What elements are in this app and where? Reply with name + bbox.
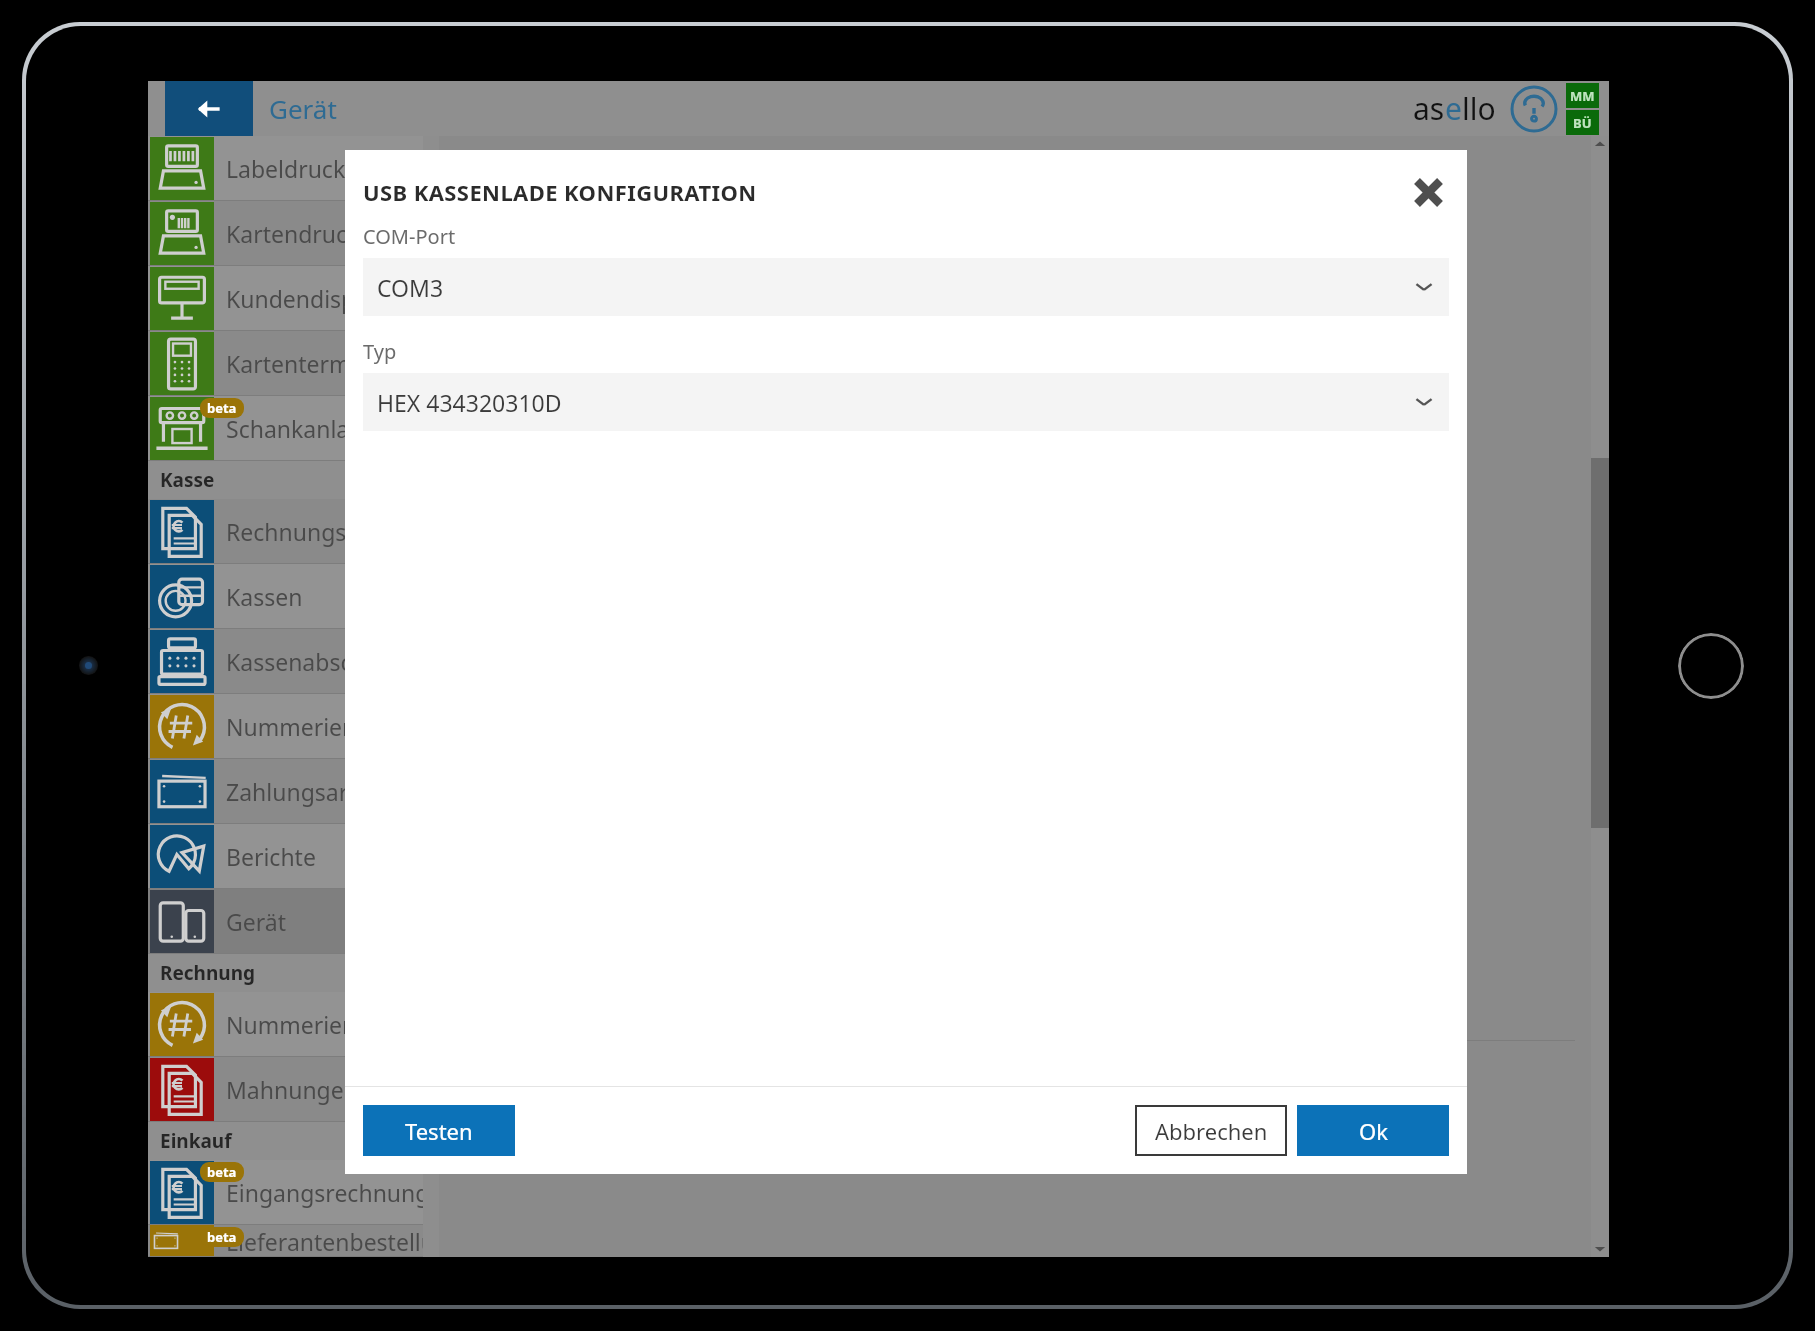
button[interactable]: Rechnungsabschluss [148, 499, 439, 564]
staticText: Rechnungsabschluss [226, 516, 439, 547]
staticText: Testen [405, 1116, 473, 1146]
staticText: Typ [363, 338, 397, 365]
staticText: Gerät [269, 91, 337, 126]
button[interactable]: BÜ [1566, 110, 1599, 135]
staticText: Abbrechen [1155, 1116, 1268, 1146]
button[interactable]: Gerät [148, 889, 439, 954]
staticText: Automatisch Bondrucker wählen [473, 246, 796, 275]
staticText: Kartendrucker [226, 218, 382, 249]
staticText: as [1413, 88, 1445, 129]
staticText: COM-Port [363, 223, 456, 250]
staticText: beta [207, 399, 237, 417]
button[interactable]: Schließen [1407, 171, 1449, 213]
staticText: Lieferantenbestellungen [226, 1226, 439, 1257]
staticText: Eingangsrechnungen [226, 1177, 439, 1208]
staticText: MM [1570, 87, 1595, 105]
staticText: Kundendisplay [226, 283, 386, 314]
staticText: Labeldrucker [226, 153, 368, 184]
staticText: beta [207, 1163, 237, 1181]
staticText: USB KASSENLADE KONFIGURATION [363, 177, 757, 207]
button[interactable]: Ok [1297, 1105, 1449, 1156]
staticText: Ok [1359, 1116, 1388, 1146]
staticText: BÜ [1573, 114, 1592, 132]
button[interactable]: COM3 [363, 258, 1449, 316]
staticText: COM3 [377, 272, 444, 303]
staticText: Kasse [160, 467, 215, 493]
button[interactable]: Nummerierung [148, 992, 439, 1057]
staticText: Nummerierung [226, 1009, 395, 1040]
staticText: Nummerierung [226, 711, 395, 742]
button[interactable]: Tischplan als Liste anzeigen [473, 1077, 772, 1106]
staticText: Tischplan als Liste anzeigen [499, 1077, 772, 1106]
button[interactable]: Eingangsrechnungen [148, 1160, 439, 1225]
staticText: Zahlungsarten [226, 776, 384, 807]
button[interactable]: Testen [363, 1105, 515, 1156]
staticText: Einkauf [160, 1128, 232, 1154]
button[interactable]: Labeldrucker [148, 136, 439, 201]
button[interactable]: Kundendisplay [148, 266, 439, 331]
staticText: Kassen [226, 581, 303, 612]
staticText: Berichte [226, 841, 316, 872]
button[interactable]: Kartendrucker [148, 201, 439, 266]
button[interactable]: Lieferantenbestellungen [148, 1225, 439, 1257]
staticText: HEX 434320310D [377, 387, 562, 418]
staticText: Kassenabschluss [226, 646, 408, 677]
button[interactable]: Berichte [148, 824, 439, 889]
button[interactable]: Nummerierung [148, 694, 439, 759]
button[interactable]: MM [1566, 83, 1599, 108]
staticText: Mahnungen [226, 1074, 358, 1105]
staticText: beta [207, 1228, 237, 1246]
staticText: e [1445, 88, 1462, 129]
button[interactable]: Hilfe [1510, 85, 1558, 133]
button[interactable]: Mahnungen [148, 1057, 439, 1122]
button[interactable]: Zahlungsarten [148, 759, 439, 824]
staticText: Gerät [226, 906, 286, 937]
button[interactable]: Schankanlage [148, 396, 439, 461]
button[interactable]: HEX 434320310D [363, 373, 1449, 431]
staticText: Kartenterminal [226, 348, 390, 379]
staticText: Schankanlage [226, 413, 377, 444]
button[interactable]: Abbrechen [1135, 1105, 1287, 1156]
staticText: Rechnung [160, 960, 256, 986]
button[interactable]: Kartenterminal [148, 331, 439, 396]
button[interactable]: Zurück [165, 81, 253, 136]
button[interactable]: Kassenabschluss [148, 629, 439, 694]
button[interactable]: Kassen [148, 564, 439, 629]
staticText: llo [1462, 88, 1496, 129]
